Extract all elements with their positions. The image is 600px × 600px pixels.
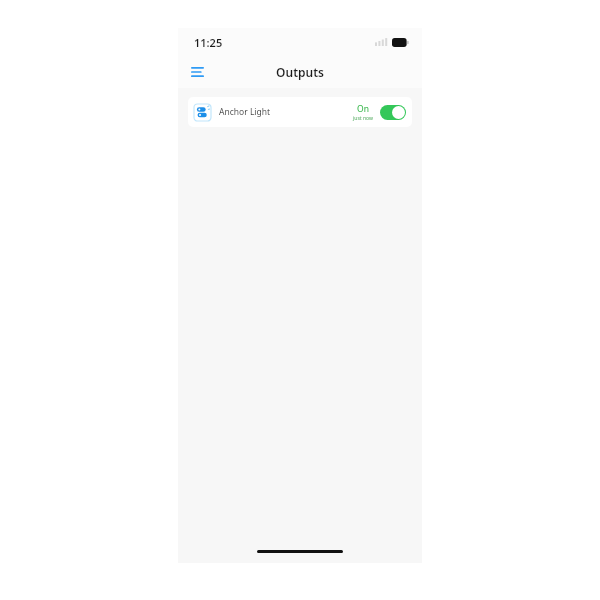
staticText: Outputs — [276, 64, 324, 80]
staticText: just now — [353, 115, 373, 122]
staticText: On — [357, 103, 369, 115]
staticText: Anchor Light — [219, 106, 271, 118]
other: Anchor light icon — [194, 104, 211, 121]
button[interactable]: Anchor light icon — [188, 97, 412, 127]
button[interactable]: Toggle Anchor Light — [380, 105, 406, 120]
staticText: 11:25 — [194, 35, 223, 50]
button[interactable]: Menu — [187, 62, 207, 82]
